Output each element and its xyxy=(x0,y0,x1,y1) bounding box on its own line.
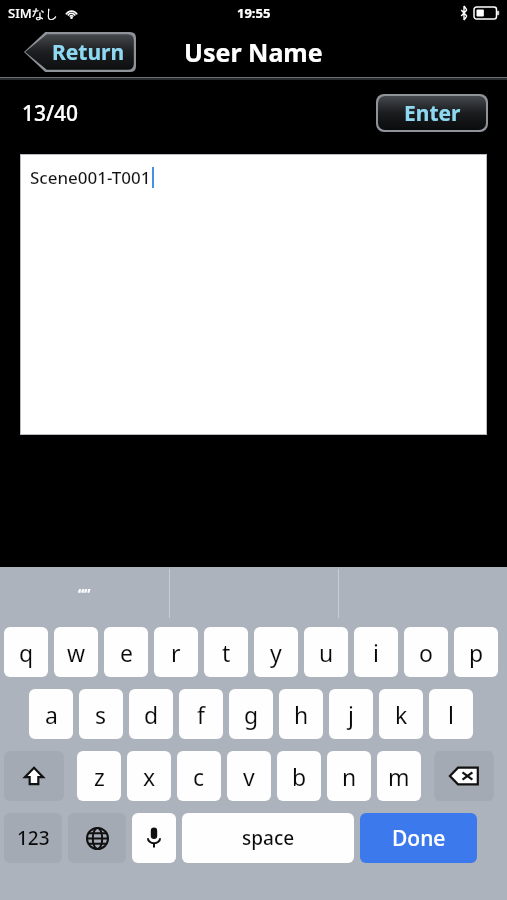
button[interactable]: s xyxy=(79,689,123,739)
staticText: u xyxy=(319,637,334,668)
button[interactable]: r xyxy=(154,627,198,677)
button[interactable]: h xyxy=(279,689,323,739)
staticText: “” xyxy=(78,584,91,603)
button[interactable]: x xyxy=(127,751,171,801)
button[interactable]: i xyxy=(354,627,398,677)
staticText: a xyxy=(45,699,58,730)
button[interactable]: o xyxy=(404,627,448,677)
button[interactable]: y xyxy=(254,627,298,677)
button[interactable]: Done xyxy=(360,813,477,863)
button[interactable]: k xyxy=(379,689,423,739)
staticText: Scene001-T001 xyxy=(30,166,151,189)
staticText: n xyxy=(342,761,357,792)
staticText: l xyxy=(448,699,454,730)
button[interactable]: m xyxy=(377,751,421,801)
button[interactable]: “” xyxy=(0,567,169,620)
button[interactable]: Dictate xyxy=(132,813,176,863)
staticText: r xyxy=(171,637,181,668)
button[interactable]: u xyxy=(304,627,348,677)
staticText: space xyxy=(242,825,295,851)
button[interactable]: Change keyboard xyxy=(68,813,126,863)
staticText: 13/40 xyxy=(22,99,79,128)
staticText: SIMなし xyxy=(8,4,59,22)
button[interactable]: e xyxy=(104,627,148,677)
button[interactable]: w xyxy=(54,627,98,677)
staticText: b xyxy=(292,761,307,792)
button[interactable]: t xyxy=(204,627,248,677)
button[interactable]: Backspace xyxy=(434,751,494,801)
button[interactable]: p xyxy=(454,627,498,677)
staticText: Return xyxy=(52,38,125,67)
staticText: d xyxy=(144,699,159,730)
button[interactable]: Enter xyxy=(378,96,486,130)
staticText: e xyxy=(120,637,133,668)
staticText: y xyxy=(270,637,282,668)
staticText: c xyxy=(193,761,205,792)
staticText: f xyxy=(197,699,205,730)
button[interactable]: b xyxy=(277,751,321,801)
staticText: i xyxy=(373,637,379,668)
staticText: User Name xyxy=(184,35,323,69)
staticText: m xyxy=(388,761,410,792)
button[interactable]: Shift xyxy=(4,751,64,801)
staticText: p xyxy=(469,637,484,668)
button[interactable]: n xyxy=(327,751,371,801)
button[interactable]: 123 xyxy=(4,813,62,863)
button[interactable]: a xyxy=(29,689,73,739)
staticText: t xyxy=(222,637,231,668)
button[interactable]: v xyxy=(227,751,271,801)
button[interactable]: g xyxy=(229,689,273,739)
staticText: o xyxy=(419,637,433,668)
staticText: Enter xyxy=(404,99,461,128)
button[interactable]: c xyxy=(177,751,221,801)
button[interactable]: Return xyxy=(24,32,136,72)
staticText: z xyxy=(94,761,105,792)
button[interactable]: l xyxy=(429,689,473,739)
staticText: q xyxy=(19,637,34,668)
button[interactable]: q xyxy=(4,627,48,677)
staticText: j xyxy=(348,699,354,730)
staticText: x xyxy=(143,761,156,792)
button[interactable]: Scene001-T001 xyxy=(21,155,486,434)
staticText: k xyxy=(395,699,408,730)
staticText: v xyxy=(243,761,255,792)
button[interactable]: d xyxy=(129,689,173,739)
staticText: g xyxy=(244,699,259,730)
button[interactable]: space xyxy=(182,813,354,863)
staticText: w xyxy=(67,637,86,668)
button[interactable]: j xyxy=(329,689,373,739)
staticText: s xyxy=(95,699,107,730)
staticText: 19:55 xyxy=(237,4,271,22)
button[interactable]: f xyxy=(179,689,223,739)
staticText: h xyxy=(294,699,309,730)
button[interactable]: z xyxy=(77,751,121,801)
staticText: Done xyxy=(392,824,446,853)
staticText: 123 xyxy=(17,825,50,851)
